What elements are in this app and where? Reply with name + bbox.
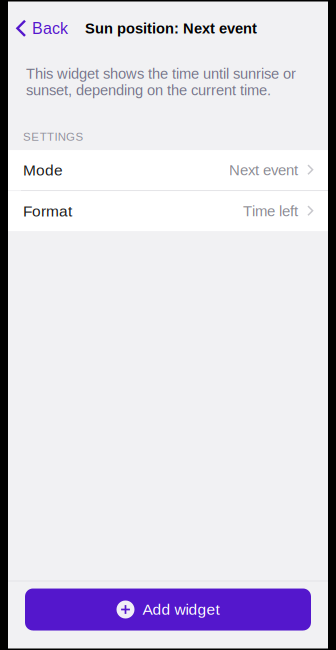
staticText: Add widget bbox=[142, 601, 219, 618]
staticText: Mode bbox=[23, 161, 63, 179]
staticText: Next event bbox=[229, 162, 298, 178]
staticText: Format bbox=[23, 202, 72, 220]
staticText: Back bbox=[32, 20, 68, 37]
button[interactable]: Mode bbox=[8, 150, 328, 190]
button[interactable]: Format bbox=[8, 191, 328, 231]
button[interactable]: Back bbox=[8, 2, 328, 54]
staticText: This widget shows the time until sunrise… bbox=[26, 65, 296, 98]
staticText: Time left bbox=[243, 203, 298, 219]
button[interactable]: Add widget bbox=[25, 588, 311, 630]
staticText: SETTINGS bbox=[23, 130, 83, 143]
staticText: Sun position: Next event bbox=[85, 20, 257, 37]
